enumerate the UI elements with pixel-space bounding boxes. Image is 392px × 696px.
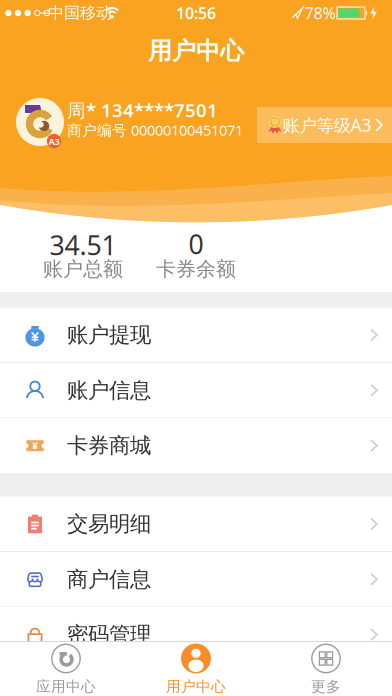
button[interactable]: 交易明细 — [0, 497, 392, 551]
staticText: 更多 — [311, 677, 341, 695]
staticText: 账户提现 — [67, 322, 151, 348]
staticText: 商户编号 00000100451071 — [67, 120, 243, 140]
staticText: 密码管理 — [67, 621, 151, 648]
staticText: 卡券商城 — [67, 432, 151, 459]
staticText: 应用中心 — [36, 677, 96, 695]
button[interactable]: 用户中心 — [131, 641, 261, 696]
button[interactable]: 商户信息 — [0, 552, 392, 607]
staticText: 78% — [304, 2, 335, 24]
button[interactable]: 更多 — [261, 641, 391, 696]
staticText: 0 — [188, 226, 203, 262]
button[interactable]: 账户信息 — [0, 363, 392, 418]
staticText: 用户中心 — [166, 677, 226, 695]
button[interactable]: 账户提现 — [0, 308, 392, 362]
button[interactable]: 应用中心 — [1, 641, 131, 696]
staticText: 交易明细 — [67, 511, 151, 537]
staticText: 账户等级A3 — [282, 113, 371, 136]
staticText: A3 — [48, 135, 59, 148]
staticText: 账户总额 — [43, 257, 123, 281]
button[interactable]: 账户等级A3 — [257, 107, 392, 143]
staticText: 商户信息 — [67, 566, 151, 592]
staticText: 用户中心 — [148, 36, 244, 66]
staticText: 10:56 — [176, 2, 216, 24]
staticText: 账户信息 — [67, 377, 151, 403]
staticText: 卡券余额 — [156, 257, 236, 281]
staticText: 中国移动 — [48, 3, 112, 23]
staticText: 34.51 — [49, 227, 116, 263]
staticText: 周* 134****7501 — [67, 98, 218, 122]
button[interactable]: 密码管理 — [0, 607, 392, 662]
button[interactable]: 卡券商城 — [0, 418, 392, 473]
